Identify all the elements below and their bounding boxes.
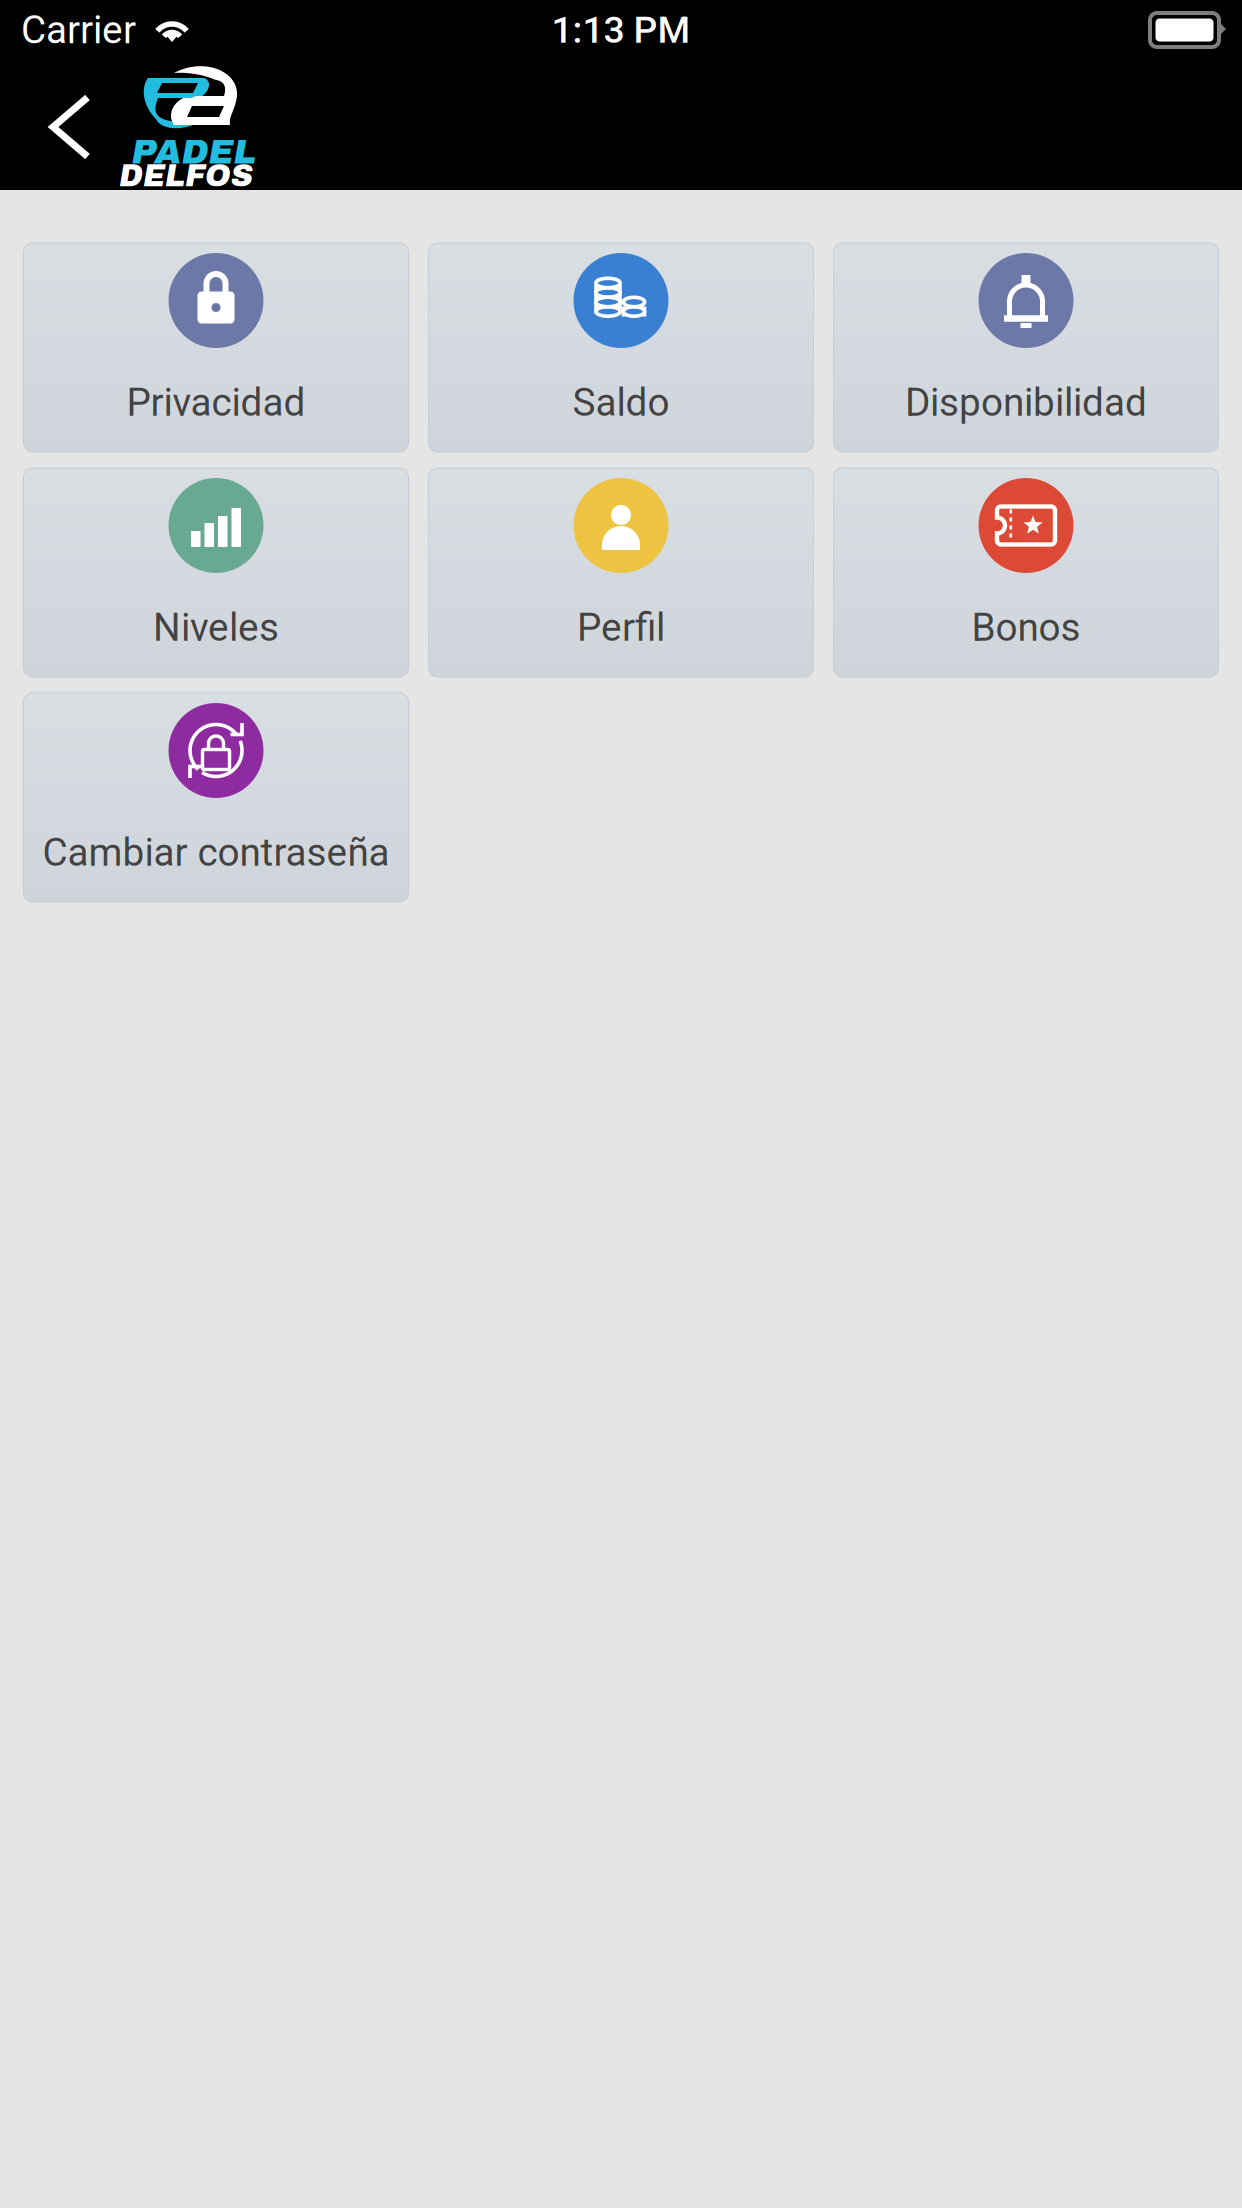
staticText: Cambiar contraseña [42, 830, 389, 875]
staticText: 1:13 PM [551, 8, 690, 52]
button[interactable]: Privacidad [23, 243, 408, 452]
staticText: Bonos [971, 605, 1080, 650]
staticText: Saldo [572, 380, 669, 425]
button[interactable]: Saldo [428, 243, 813, 452]
staticText: DELFOS [119, 159, 253, 193]
staticText: Privacidad [126, 380, 305, 425]
staticText: Niveles [153, 605, 279, 650]
button[interactable]: Disponibilidad [833, 243, 1218, 452]
staticText: Carrier [21, 7, 136, 53]
staticText: Disponibilidad [905, 380, 1147, 425]
button[interactable]: Bonos [833, 468, 1218, 677]
staticText: Perfil [577, 605, 665, 650]
button[interactable]: Cambiar contraseña [23, 693, 408, 902]
button[interactable]: Niveles [23, 468, 408, 677]
button[interactable]: Perfil [428, 468, 813, 677]
staticText: PADEL [131, 133, 256, 171]
button[interactable]: Back [0, 60, 110, 190]
